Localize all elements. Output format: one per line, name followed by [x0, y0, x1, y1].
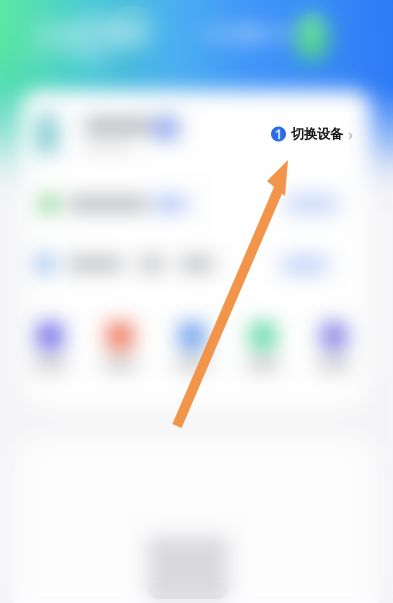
staticText: ›: [348, 123, 353, 145]
button[interactable]: 切换设备: [271, 123, 353, 145]
staticText: 1: [274, 125, 282, 143]
staticText: 切换设备: [291, 126, 343, 142]
